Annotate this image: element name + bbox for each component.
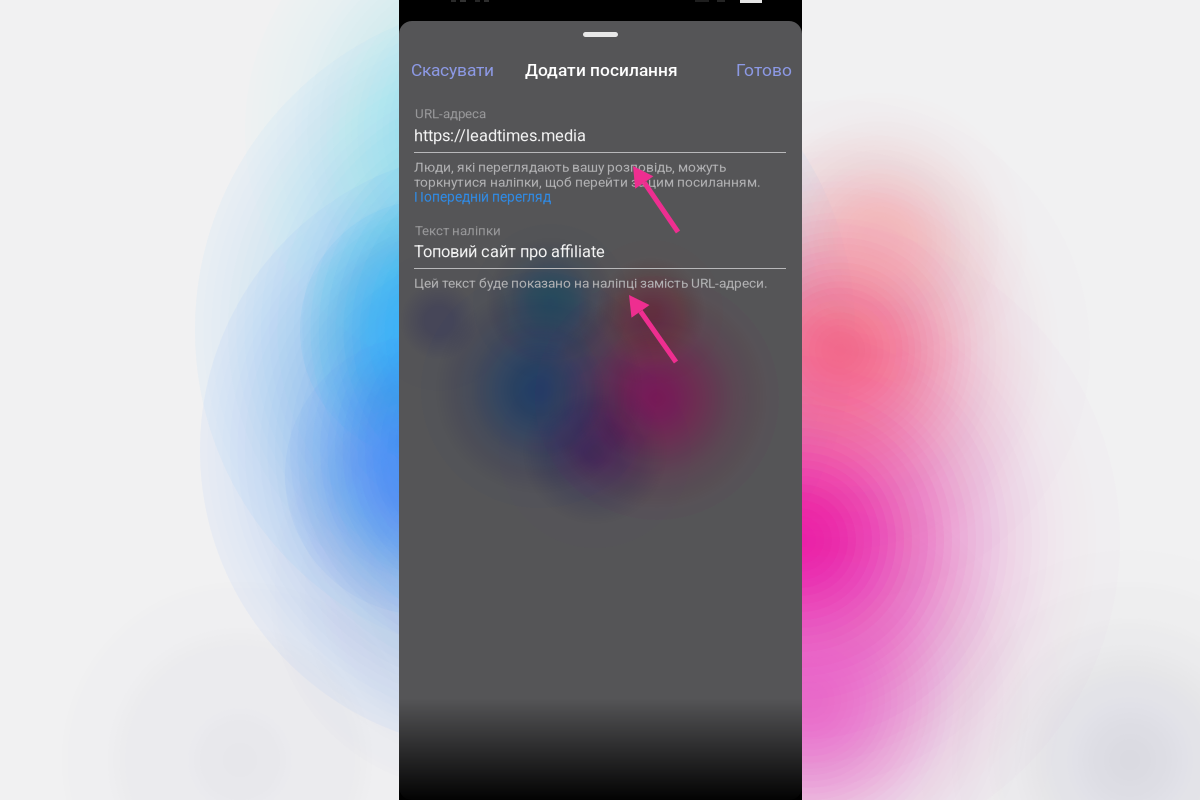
staticText: URL-адреса [415, 106, 486, 122]
staticText: торкнутися наліпки, щоб перейти за цим п… [414, 174, 761, 190]
staticText: Готово [736, 60, 792, 80]
staticText: Попередній перегляд [414, 189, 551, 205]
staticText: Додати посилання [525, 60, 678, 80]
staticText: https://leadtimes.media [414, 126, 586, 145]
staticText: Скасувати [411, 60, 494, 80]
staticText: Топовий сайт про affiliate [414, 242, 605, 261]
staticText: Цей текст буде показано на наліпці заміс… [414, 275, 768, 291]
button[interactable]: Попередній перегляд [414, 187, 551, 207]
button[interactable]: Скасувати [407, 52, 498, 88]
staticText: Люди, які переглядають вашу розповідь, м… [414, 159, 726, 175]
staticText: Текст наліпки [415, 223, 501, 239]
button[interactable]: Готово [732, 52, 796, 88]
